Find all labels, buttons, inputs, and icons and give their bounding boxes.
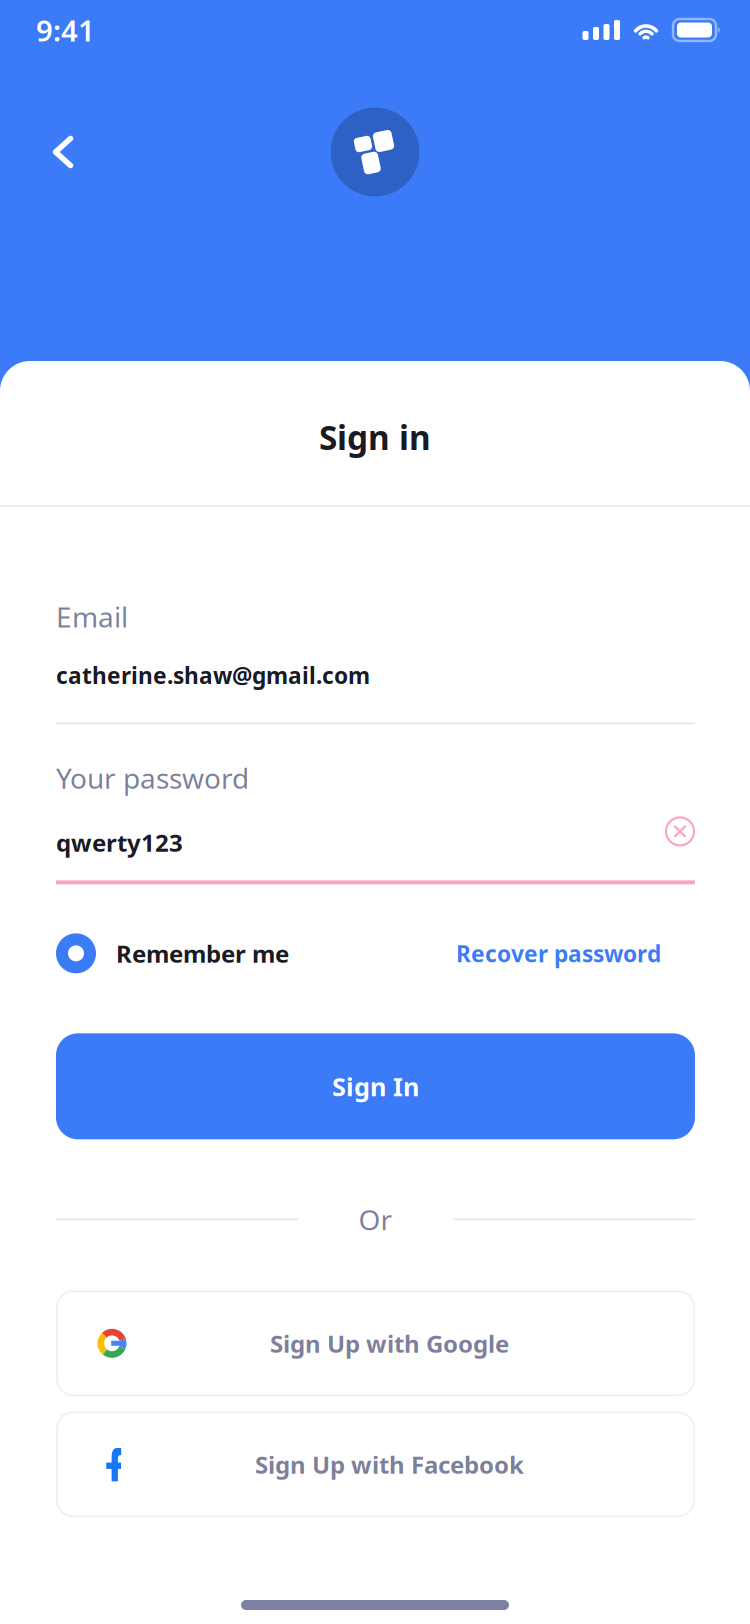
button[interactable]: Remember me bbox=[56, 933, 289, 973]
staticText: Email bbox=[56, 598, 128, 635]
staticText: catherine.shaw@gmail.com bbox=[56, 660, 370, 690]
staticText: Sign in bbox=[319, 415, 431, 459]
staticText: Remember me bbox=[116, 937, 289, 969]
button[interactable]: Recover password bbox=[456, 933, 695, 973]
staticText: qwerty123 bbox=[56, 826, 183, 858]
staticText: Sign Up with Google bbox=[270, 1327, 509, 1359]
button[interactable]: Sign Up with Google bbox=[56, 1290, 695, 1396]
button[interactable]: Sign In bbox=[56, 1033, 695, 1139]
button[interactable]: Back bbox=[33, 122, 93, 182]
staticText: Your password bbox=[56, 759, 249, 796]
button[interactable]: Clear password bbox=[665, 827, 695, 857]
staticText: Or bbox=[358, 1201, 392, 1238]
staticText: Sign Up with Facebook bbox=[255, 1448, 524, 1480]
staticText: 9:41 bbox=[36, 10, 95, 49]
button[interactable]: Sign Up with Facebook bbox=[56, 1411, 695, 1517]
staticText: Sign In bbox=[332, 1069, 419, 1103]
staticText: Recover password bbox=[456, 938, 661, 968]
